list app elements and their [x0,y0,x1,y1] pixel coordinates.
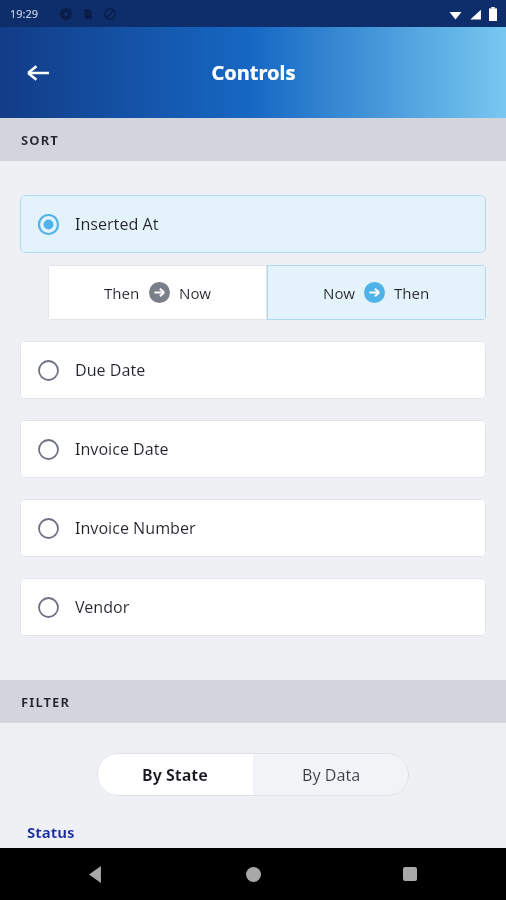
staticText: Then [394,283,430,303]
button[interactable]: Recents [388,852,432,896]
staticText: Then [104,283,140,303]
button[interactable]: Due Date [20,341,486,399]
staticText: SORT [21,131,59,149]
button[interactable]: Back [14,49,62,97]
staticText: Invoice Number [75,517,196,539]
button[interactable]: Home [231,852,275,896]
staticText: Due Date [75,359,146,381]
staticText: Controls [211,59,296,86]
staticText: Now [323,283,355,303]
button[interactable]: Back [74,852,118,896]
staticText: 19:29 [10,6,39,21]
button[interactable]: Invoice Number [20,499,486,557]
button[interactable]: Now [267,265,486,320]
button[interactable]: Then [48,265,267,320]
button[interactable]: Invoice Date [20,420,486,478]
button[interactable]: By State [97,753,253,796]
staticText: FILTER [21,693,71,711]
button[interactable]: By Data [253,753,409,796]
button[interactable]: Inserted At [20,195,486,253]
button[interactable]: Vendor [20,578,486,636]
staticText: By Data [302,764,361,786]
staticText: Now [179,283,211,303]
staticText: Vendor [75,596,130,618]
staticText: Status [27,822,75,842]
staticText: Inserted At [75,213,159,235]
staticText: Invoice Date [75,438,169,460]
staticText: By State [142,764,208,786]
